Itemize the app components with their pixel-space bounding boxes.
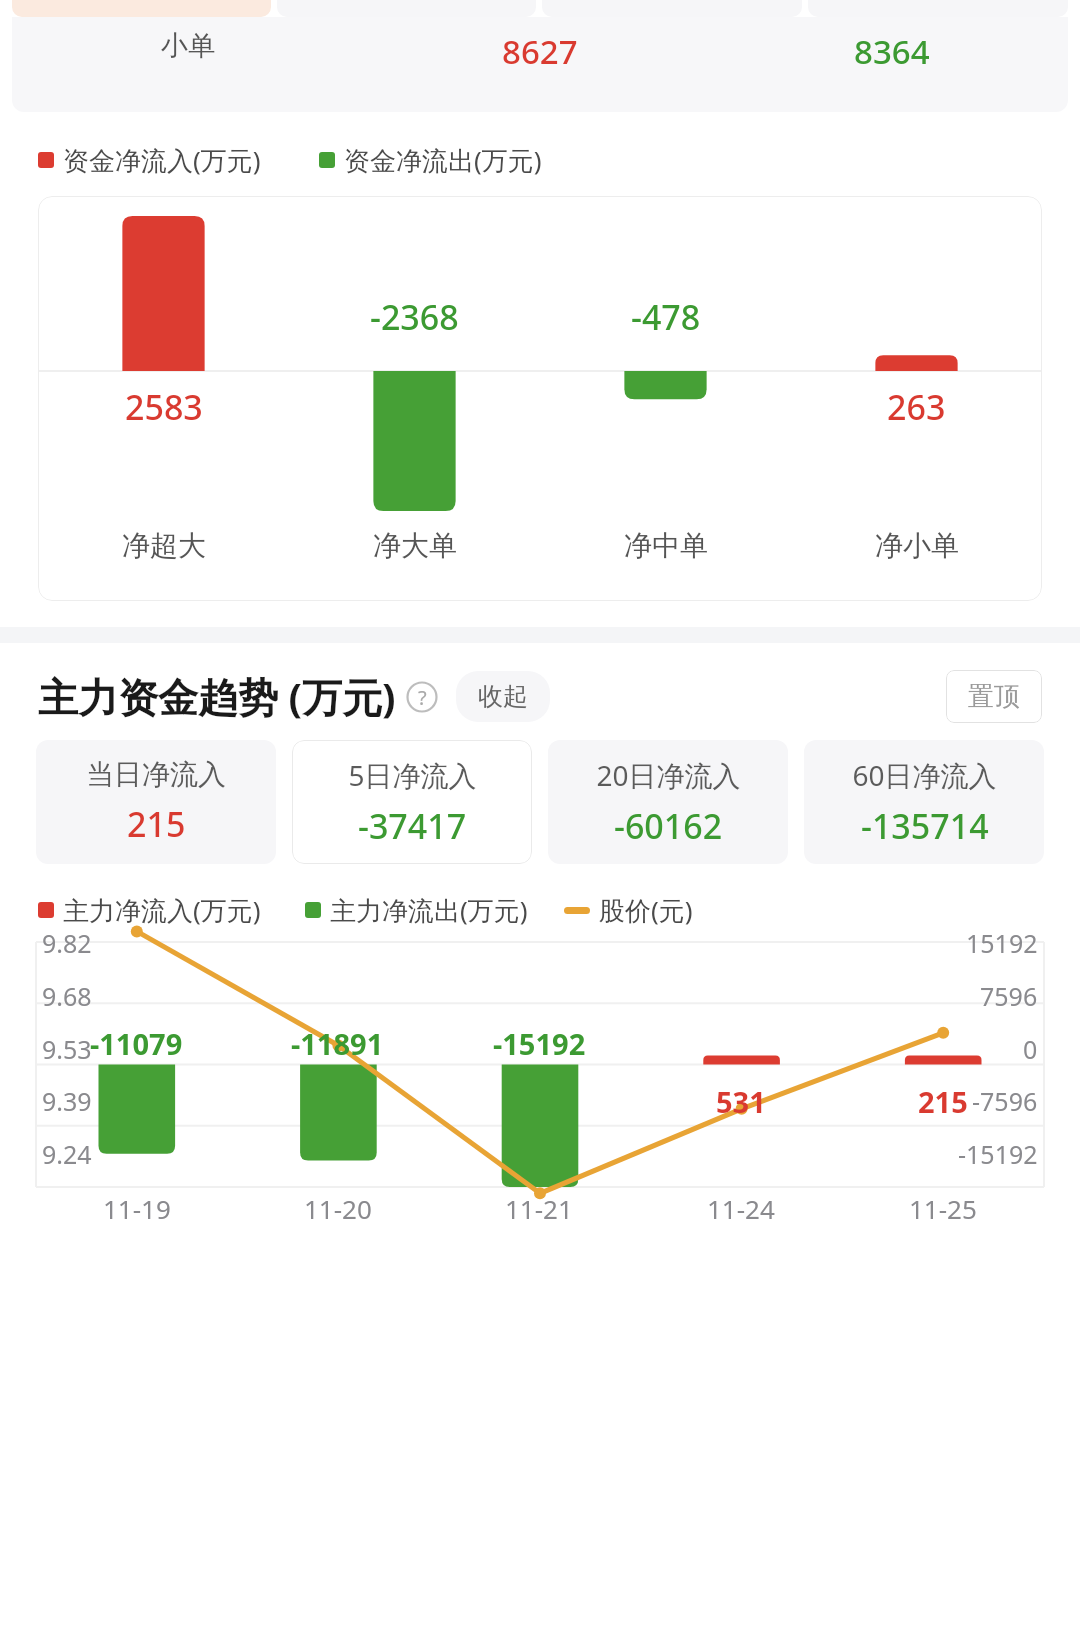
button[interactable]: 5日净流入 bbox=[292, 740, 532, 864]
staticText: 9.53 bbox=[42, 1032, 92, 1066]
staticText: 11-19 bbox=[103, 1191, 171, 1226]
staticText: -15192 bbox=[493, 1024, 586, 1063]
staticText: 主力净流出(万元) bbox=[330, 892, 528, 928]
staticText: 11-20 bbox=[304, 1191, 372, 1226]
staticText: 263 bbox=[887, 384, 946, 430]
button[interactable]: 说明 bbox=[406, 681, 438, 713]
staticText: 9.82 bbox=[42, 926, 92, 960]
staticText: 净中单 bbox=[624, 528, 708, 563]
button[interactable]: 收起 bbox=[456, 671, 550, 722]
button[interactable]: 小单 bbox=[12, 17, 1068, 112]
staticText: 小单 bbox=[161, 29, 215, 63]
staticText: 净大单 bbox=[373, 528, 457, 563]
staticText: ? bbox=[418, 684, 427, 711]
staticText: 7596 bbox=[980, 979, 1038, 1013]
button[interactable] bbox=[12, 0, 271, 17]
staticText: 8627 bbox=[502, 29, 578, 74]
staticText: -60162 bbox=[614, 803, 723, 849]
button[interactable]: 60日净流入 bbox=[804, 740, 1044, 864]
staticText: 资金净流入(万元) bbox=[63, 142, 261, 178]
staticText: 置顶 bbox=[968, 680, 1020, 713]
staticText: 8364 bbox=[854, 29, 930, 74]
button[interactable]: 20日净流入 bbox=[548, 740, 788, 864]
button[interactable]: 2583 bbox=[38, 196, 1042, 601]
staticText: 资金净流出(万元) bbox=[344, 142, 542, 178]
staticText: 主力资金趋势 (万元) bbox=[38, 669, 396, 724]
staticText: 215 bbox=[127, 801, 186, 847]
staticText: -37417 bbox=[358, 803, 467, 849]
staticText: 净超大 bbox=[122, 528, 206, 563]
staticText: 主力净流入(万元) bbox=[63, 892, 261, 928]
staticText: -15192 bbox=[958, 1137, 1038, 1171]
staticText: 215 bbox=[918, 1082, 968, 1121]
staticText: -7596 bbox=[972, 1084, 1038, 1118]
button[interactable]: 当日净流入 bbox=[36, 740, 276, 864]
staticText: 股价(元) bbox=[599, 892, 693, 928]
staticText: 0 bbox=[1023, 1032, 1038, 1066]
staticText: 11-21 bbox=[505, 1191, 573, 1226]
staticText: -11891 bbox=[291, 1024, 384, 1063]
staticText: -11079 bbox=[90, 1024, 183, 1063]
staticText: 531 bbox=[716, 1082, 766, 1121]
staticText: 15192 bbox=[966, 926, 1038, 960]
staticText: 收起 bbox=[478, 681, 528, 712]
staticText: -2368 bbox=[370, 294, 459, 340]
staticText: 9.68 bbox=[42, 979, 92, 1013]
button[interactable]: 置顶 bbox=[946, 670, 1042, 723]
staticText: 5日净流入 bbox=[348, 756, 477, 794]
staticText: 11-24 bbox=[707, 1191, 775, 1226]
staticText: -135714 bbox=[861, 803, 989, 849]
staticText: -478 bbox=[631, 294, 701, 340]
staticText: 9.39 bbox=[42, 1084, 92, 1118]
staticText: 20日净流入 bbox=[596, 756, 741, 794]
staticText: 2583 bbox=[125, 384, 203, 430]
staticText: 9.24 bbox=[42, 1137, 92, 1171]
staticText: 净小单 bbox=[875, 528, 959, 563]
staticText: 当日净流入 bbox=[86, 757, 226, 792]
staticText: 11-25 bbox=[909, 1191, 977, 1226]
staticText: 60日净流入 bbox=[852, 756, 997, 794]
